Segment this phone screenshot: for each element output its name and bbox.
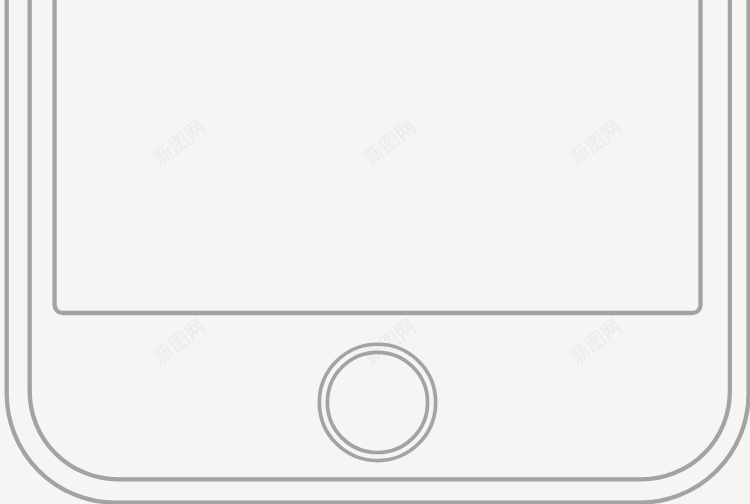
button[interactable]: Phone screen [55, 0, 701, 313]
button[interactable]: Home button [319, 344, 435, 460]
